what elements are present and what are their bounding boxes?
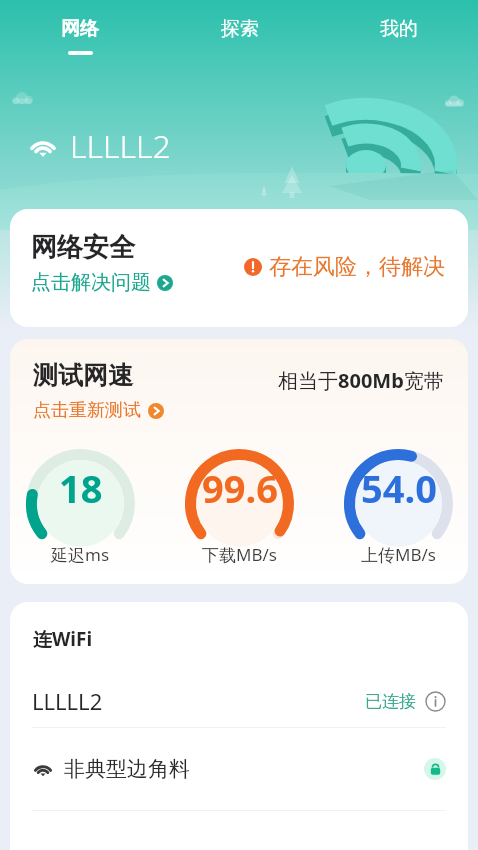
button[interactable]: 网络安全 xyxy=(10,209,468,327)
staticText: 延迟ms xyxy=(51,543,110,566)
staticText: 网络安全 xyxy=(31,231,135,264)
button[interactable]: LLLLL2 xyxy=(10,675,468,727)
button[interactable]: 测试网速 xyxy=(10,339,468,584)
staticText: LLLLL2 xyxy=(70,124,171,168)
staticText: 点击重新测试 xyxy=(33,399,141,422)
staticText: 非典型边角料 xyxy=(64,756,190,782)
staticText: LLLLL2 xyxy=(32,686,103,716)
button[interactable]: 网络 xyxy=(0,0,160,72)
staticText: 上传MB/s xyxy=(361,543,436,566)
staticText: 54.0 xyxy=(361,462,437,514)
staticText: 我的 xyxy=(380,17,418,41)
button[interactable]: Info xyxy=(425,691,446,712)
staticText: 存在风险，待解决 xyxy=(269,253,445,281)
staticText: 探索 xyxy=(221,17,259,41)
staticText: 点击解决问题 xyxy=(31,270,151,295)
staticText: 测试网速 xyxy=(33,360,133,391)
staticText: 99.6 xyxy=(202,462,278,514)
button[interactable]: 探索 xyxy=(160,0,319,72)
staticText: 网络 xyxy=(61,17,99,41)
staticText: 相当于800Mb宽带 xyxy=(278,367,444,394)
staticText: 已连接 xyxy=(365,691,416,712)
staticText: 连WiFi xyxy=(33,626,93,652)
button[interactable]: 非典型边角料 xyxy=(10,728,468,810)
button[interactable]: 我的 xyxy=(319,0,478,72)
staticText: 下载MB/s xyxy=(202,543,277,566)
staticText: 18 xyxy=(59,462,103,514)
